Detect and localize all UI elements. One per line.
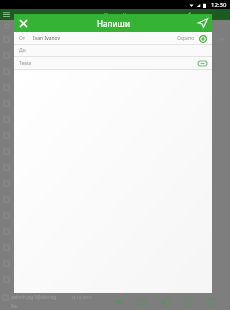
button[interactable] [0,159,230,175]
staticText: Скрито [177,35,195,42]
button[interactable] [0,271,230,287]
button[interactable] [0,127,230,143]
button[interactable]: От [19,32,207,44]
staticText: 14.12.2015 [71,295,92,300]
button[interactable]: Send [194,14,212,32]
button[interactable]: Attach [197,58,207,68]
staticText: Ivan Ivanov [33,35,61,42]
button[interactable] [0,111,230,127]
staticText: До [19,47,26,54]
staticText: Тема [19,60,31,67]
button[interactable]: Тема [19,57,207,69]
button[interactable] [0,79,230,95]
staticText: Кутия ∨ [104,11,127,19]
staticText: 12:30 [211,1,227,9]
button[interactable] [0,95,230,111]
button[interactable] [0,207,230,223]
button[interactable] [0,143,230,159]
button[interactable] [0,191,230,207]
button[interactable]: Add recipient [198,34,207,43]
button[interactable] [0,31,230,47]
staticText: Re: [11,303,19,310]
button[interactable]: Spam [180,294,196,310]
staticText: Напиши [97,18,130,29]
button[interactable]: Close [14,14,32,32]
button[interactable]: До [19,45,207,56]
button[interactable]: Reply [111,294,127,310]
button[interactable]: Delete [203,294,219,310]
button[interactable] [0,223,230,239]
button[interactable]: Forward [157,294,173,310]
button[interactable] [0,175,230,191]
button[interactable] [0,239,230,255]
button[interactable] [0,47,230,63]
button[interactable]: Mark as read [134,294,150,310]
staticText: От [19,35,26,42]
staticText: admin.pg1@abv.bg [11,294,57,301]
button[interactable] [0,63,230,79]
button[interactable] [0,255,230,271]
